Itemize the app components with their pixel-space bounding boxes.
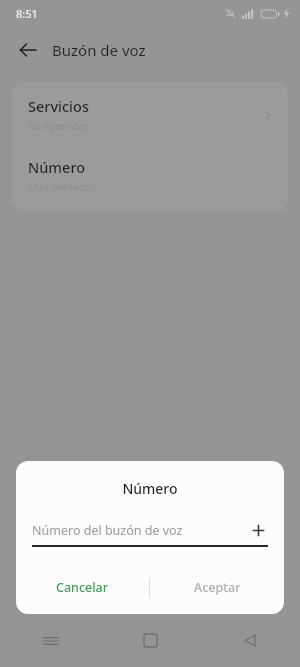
staticText: Cancelar — [56, 579, 109, 596]
staticText: Número del buzón de voz — [32, 522, 248, 539]
button[interactable]: Número del buzón de voz — [32, 520, 268, 540]
button[interactable]: Home — [100, 614, 200, 667]
staticText: 8:51 — [16, 6, 38, 21]
button[interactable]: Recent apps — [0, 614, 100, 667]
staticText: Aceptar — [194, 579, 241, 596]
button[interactable]: Aceptar — [150, 567, 284, 608]
staticText: Su operador — [28, 119, 89, 133]
staticText: <No definido> — [28, 180, 98, 194]
button[interactable]: Back — [8, 30, 48, 70]
staticText: Número — [28, 157, 86, 177]
staticText: Servicios — [28, 96, 89, 116]
button[interactable]: Add contact — [248, 520, 268, 540]
button[interactable]: Número — [12, 145, 288, 212]
staticText: Buzón de voz — [52, 40, 146, 60]
button[interactable]: Servicios — [12, 82, 288, 145]
button[interactable]: Cancelar — [16, 567, 149, 608]
staticText: Número — [16, 479, 284, 498]
